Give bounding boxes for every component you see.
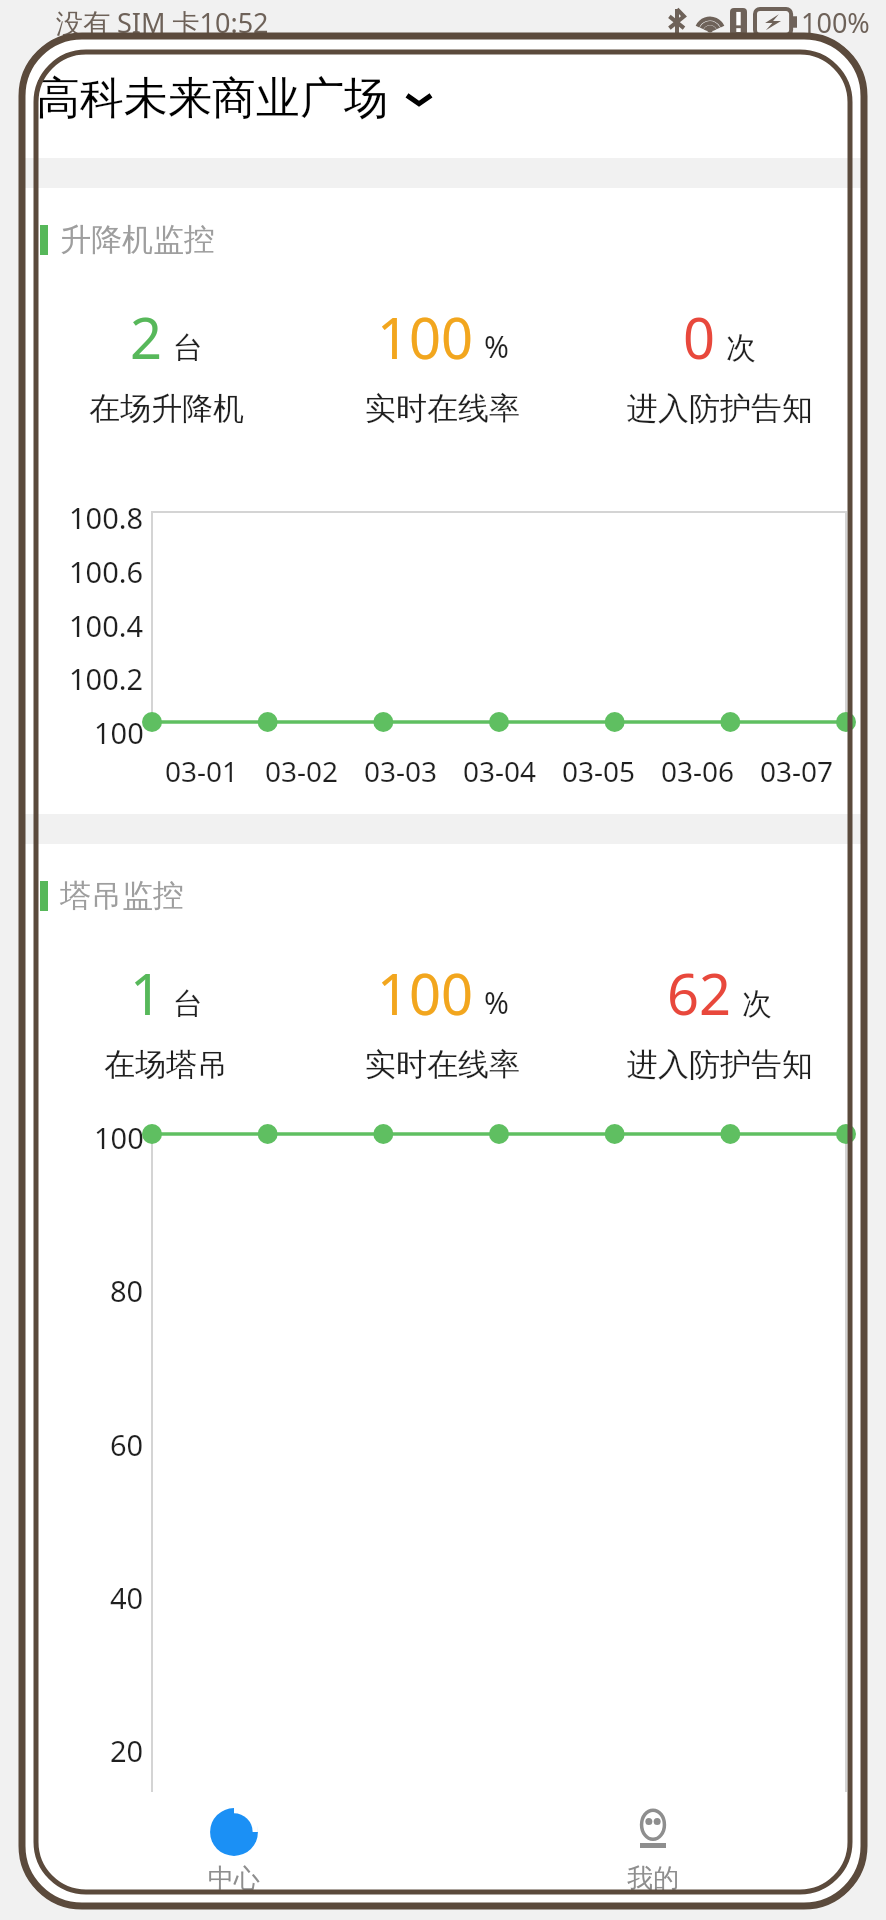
staticText: 我的 bbox=[627, 1862, 679, 1895]
staticText: 40 bbox=[110, 1578, 144, 1617]
staticText: 100% bbox=[801, 4, 870, 41]
staticText: 60 bbox=[110, 1425, 144, 1464]
staticText: 在场塔吊 bbox=[104, 1045, 228, 1084]
staticText: % bbox=[484, 982, 509, 1023]
staticText: 在场升降机 bbox=[89, 389, 244, 428]
staticText: 1 bbox=[130, 955, 163, 1031]
staticText: 100.2 bbox=[69, 659, 144, 698]
button[interactable]: 100 bbox=[304, 299, 581, 428]
staticText: 进入防护告知 bbox=[627, 389, 813, 428]
other: 中心 bbox=[208, 1806, 260, 1858]
button[interactable]: 0 bbox=[581, 299, 858, 428]
staticText: 0 bbox=[683, 299, 716, 375]
staticText: 03-05 bbox=[562, 752, 636, 790]
staticText: 100 bbox=[94, 1118, 144, 1157]
staticText: 03-02 bbox=[265, 752, 339, 790]
staticText: 次 bbox=[742, 985, 772, 1023]
staticText: 台 bbox=[173, 985, 203, 1023]
staticText: 中心 bbox=[208, 1862, 260, 1895]
staticText: 03-04 bbox=[463, 752, 537, 790]
staticText: 100.8 bbox=[69, 498, 144, 537]
staticText: 03-07 bbox=[760, 752, 834, 790]
staticText: 没有 SIM 卡10:52 bbox=[56, 4, 269, 41]
staticText: 80 bbox=[110, 1271, 144, 1310]
button[interactable]: 我的 bbox=[443, 1792, 862, 1904]
staticText: 2 bbox=[130, 299, 163, 375]
button[interactable]: 1 bbox=[28, 955, 304, 1084]
button[interactable]: 62 bbox=[581, 955, 858, 1084]
staticText: % bbox=[484, 326, 509, 367]
other: 我的 bbox=[627, 1806, 679, 1858]
staticText: 实时在线率 bbox=[365, 389, 520, 428]
staticText: 100.6 bbox=[69, 552, 144, 591]
staticText: 03-01 bbox=[165, 752, 239, 790]
staticText: 100.4 bbox=[69, 606, 144, 645]
staticText: 台 bbox=[173, 329, 203, 367]
button[interactable]: 2 bbox=[28, 299, 304, 428]
staticText: 进入防护告知 bbox=[627, 1045, 813, 1084]
staticText: 次 bbox=[726, 329, 756, 367]
staticText: 塔吊监控 bbox=[60, 876, 184, 915]
staticText: 03-06 bbox=[661, 752, 735, 790]
button[interactable]: 中心 bbox=[24, 1792, 443, 1904]
staticText: 100 bbox=[377, 955, 474, 1031]
button[interactable]: 100 bbox=[304, 955, 581, 1084]
staticText: 62 bbox=[667, 955, 732, 1031]
staticText: 高科未来商业广场 bbox=[36, 71, 388, 126]
staticText: 100 bbox=[377, 299, 474, 375]
staticText: 03-03 bbox=[364, 752, 438, 790]
staticText: 20 bbox=[110, 1731, 144, 1770]
staticText: 升降机监控 bbox=[60, 220, 215, 259]
staticText: 100 bbox=[94, 713, 144, 752]
staticText: 实时在线率 bbox=[365, 1045, 520, 1084]
button[interactable]: 高科未来商业广场 bbox=[24, 38, 862, 158]
